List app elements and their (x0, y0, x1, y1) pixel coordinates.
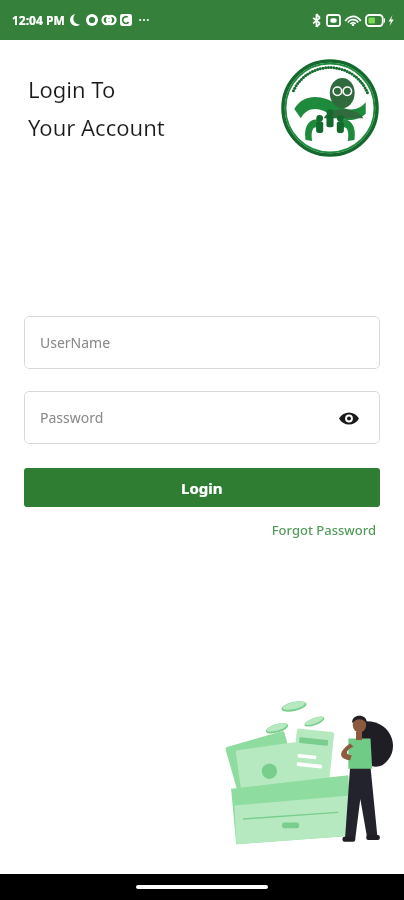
staticText: Your Account (28, 112, 165, 142)
button[interactable]: Login (24, 468, 380, 507)
staticText: Login To (28, 74, 116, 104)
button[interactable]: Password (24, 391, 380, 444)
staticText: Login (181, 478, 223, 498)
staticText: UserName (40, 333, 111, 352)
staticText: Forgot Password (271, 521, 376, 539)
staticText: Password (40, 408, 104, 427)
staticText: 12:04 PM (12, 12, 65, 28)
button[interactable]: Show password (334, 403, 364, 433)
button[interactable]: UserName (24, 316, 380, 369)
button[interactable]: Forgot Password (267, 517, 380, 543)
